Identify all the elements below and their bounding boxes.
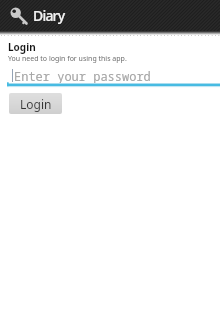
button[interactable]: Diary [0, 0, 220, 31]
staticText: Enter your password [14, 68, 151, 84]
staticText: Diary [33, 6, 65, 25]
staticText: Login [8, 40, 36, 54]
staticText: You need to login for using this app. [8, 54, 127, 64]
button[interactable]: Login [9, 93, 62, 114]
staticText: Login [20, 96, 52, 112]
button[interactable]: Enter your password [0, 64, 220, 88]
